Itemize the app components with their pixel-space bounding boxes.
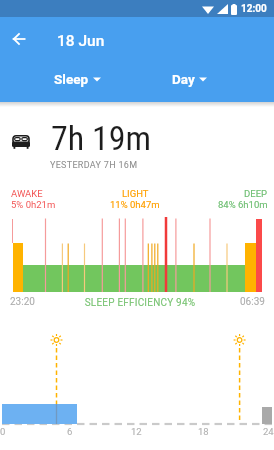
button[interactable] xyxy=(6,26,32,52)
staticText: 24 xyxy=(263,426,274,437)
staticText: 23:20 xyxy=(10,296,35,308)
staticText: 12 xyxy=(131,426,142,437)
staticText: 18 xyxy=(198,426,209,437)
staticText: LIGHT xyxy=(122,188,149,199)
staticText: Sleep xyxy=(54,71,89,87)
staticText: 06:39 xyxy=(240,296,265,308)
staticText: Day xyxy=(172,71,195,87)
button[interactable]: Sleep xyxy=(46,63,109,95)
staticText: 6 xyxy=(67,426,73,437)
staticText: AWAKE xyxy=(11,188,43,199)
staticText: SLEEP EFFICIENCY 94% xyxy=(3,297,274,309)
staticText: 12:00 xyxy=(241,3,267,15)
staticText: 84% 6h10m xyxy=(218,199,268,210)
staticText: 7h 19m xyxy=(51,118,152,158)
staticText: 5% 0h21m xyxy=(11,199,56,210)
staticText: DEEP xyxy=(244,188,268,199)
staticText: 0 xyxy=(0,426,6,437)
staticText: 11% 0h47m xyxy=(110,199,160,210)
button[interactable]: Day xyxy=(164,63,215,95)
staticText: YESTERDAY 7H 16M xyxy=(50,160,138,171)
staticText: 18 Jun xyxy=(57,32,105,50)
